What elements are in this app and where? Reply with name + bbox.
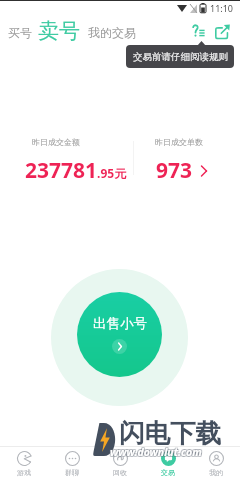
staticText: www.downlut.com: [109, 446, 201, 460]
staticText: 回收: [113, 468, 127, 477]
button[interactable]: Share: [212, 21, 232, 41]
staticText: www.downlut.com: [111, 445, 203, 459]
staticText: www.downlut.com: [110, 444, 202, 458]
button[interactable]: 昨日成交单数: [136, 134, 240, 182]
staticText: www.downlut.com: [110, 445, 202, 459]
staticText: 游戏: [17, 468, 31, 477]
staticText: 卖号: [38, 18, 80, 44]
staticText: 11:10: [210, 2, 234, 14]
staticText: www.downlut.com: [110, 446, 202, 460]
staticText: 交易: [161, 468, 175, 477]
staticText: www.downlut.com: [111, 444, 203, 458]
staticText: 我的: [209, 468, 223, 477]
button[interactable]: Help and rules: [189, 22, 208, 40]
staticText: 我的交易: [88, 25, 136, 40]
button[interactable]: 游戏: [0, 447, 48, 480]
staticText: 买号: [8, 25, 32, 40]
button[interactable]: 群聊: [48, 447, 96, 480]
staticText: www.downlut.com: [109, 444, 201, 458]
button[interactable]: 买号: [5, 23, 35, 42]
button[interactable]: 我的交易: [85, 23, 139, 42]
staticText: 出售小号: [93, 315, 147, 332]
staticText: 昨日成交单数: [155, 137, 203, 147]
button[interactable]: 交易前请仔细阅读规则: [126, 45, 234, 68]
button[interactable]: 我的: [192, 447, 240, 480]
staticText: 昨日成交金额: [32, 137, 80, 147]
button[interactable]: 昨日成交金额: [4, 134, 132, 182]
staticText: 群聊: [65, 468, 79, 477]
staticText: 交易前请仔细阅读规则: [133, 51, 228, 63]
staticText: 973: [156, 156, 193, 185]
button[interactable]: 卖号: [35, 16, 83, 46]
staticText: www.downlut.com: [109, 445, 201, 459]
staticText: 闪电下载: [119, 417, 221, 449]
button[interactable]: 交易: [144, 447, 192, 480]
staticText: www.downlut.com: [111, 446, 203, 460]
button[interactable]: 出售小号: [77, 292, 162, 377]
staticText: 237781.95元: [25, 156, 127, 185]
button[interactable]: 回收: [96, 447, 144, 480]
